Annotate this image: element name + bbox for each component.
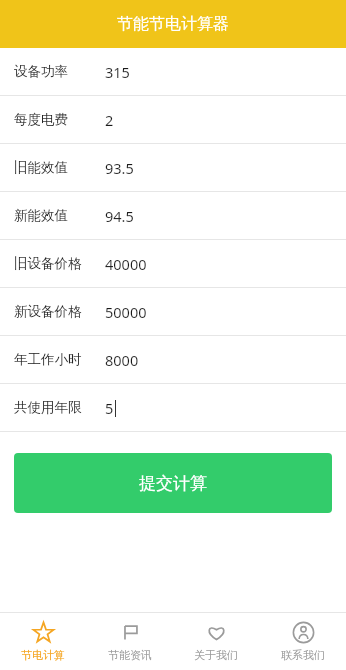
staticText: 93.5	[105, 158, 134, 178]
button[interactable]: 旧能效值	[0, 144, 346, 192]
button[interactable]: 联系我们	[260, 621, 346, 662]
button[interactable]: 共使用年限	[0, 384, 346, 432]
button[interactable]: 节电计算	[0, 621, 86, 662]
staticText: 提交计算	[139, 473, 207, 494]
staticText: 50000	[105, 302, 147, 322]
staticText: 关于我们	[194, 648, 238, 662]
button[interactable]: 新能效值	[0, 192, 346, 240]
button[interactable]: 设备功率	[0, 48, 346, 96]
staticText: 8000	[105, 350, 139, 370]
staticText: 2	[105, 110, 114, 130]
staticText: 94.5	[105, 206, 134, 226]
button[interactable]: 提交计算	[14, 453, 332, 513]
button[interactable]: 每度电费	[0, 96, 346, 144]
staticText: 联系我们	[281, 648, 325, 662]
button[interactable]: 新设备价格	[0, 288, 346, 336]
staticText: 共使用年限	[14, 399, 82, 416]
staticText: 每度电费	[14, 111, 68, 128]
button[interactable]: 关于我们	[173, 621, 259, 662]
staticText: 新设备价格	[14, 303, 82, 320]
button[interactable]: 旧设备价格	[0, 240, 346, 288]
staticText: 5	[105, 398, 114, 418]
staticText: 节电计算	[21, 648, 65, 662]
staticText: 40000	[105, 254, 147, 274]
staticText: 旧能效值	[14, 159, 68, 176]
staticText: 年工作小时	[14, 351, 82, 368]
staticText: 315	[105, 62, 130, 82]
staticText: 新能效值	[14, 207, 68, 224]
staticText: 旧设备价格	[14, 255, 82, 272]
staticText: 节能资讯	[108, 648, 152, 662]
staticText: 设备功率	[14, 63, 68, 80]
button[interactable]: 年工作小时	[0, 336, 346, 384]
button[interactable]: 节能资讯	[87, 621, 173, 662]
staticText: 节能节电计算器	[117, 14, 229, 34]
